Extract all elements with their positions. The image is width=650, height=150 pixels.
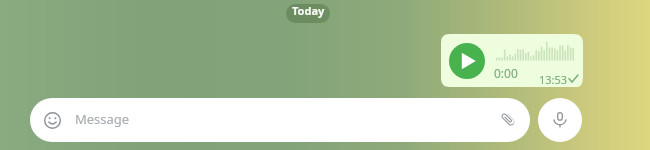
button[interactable]: Today bbox=[286, 4, 330, 23]
button[interactable]: Record voice message bbox=[538, 98, 582, 142]
staticText: 13:53 bbox=[539, 72, 568, 87]
button[interactable]: Emoji bbox=[30, 98, 530, 142]
staticText: 0:00 bbox=[494, 65, 518, 81]
button[interactable]: Play voice message bbox=[441, 34, 583, 87]
button[interactable]: Play voice message bbox=[449, 43, 485, 79]
button[interactable]: Attach bbox=[499, 110, 517, 128]
button[interactable]: Emoji bbox=[44, 112, 61, 129]
staticText: Message bbox=[75, 110, 130, 128]
staticText: Today bbox=[292, 4, 325, 18]
